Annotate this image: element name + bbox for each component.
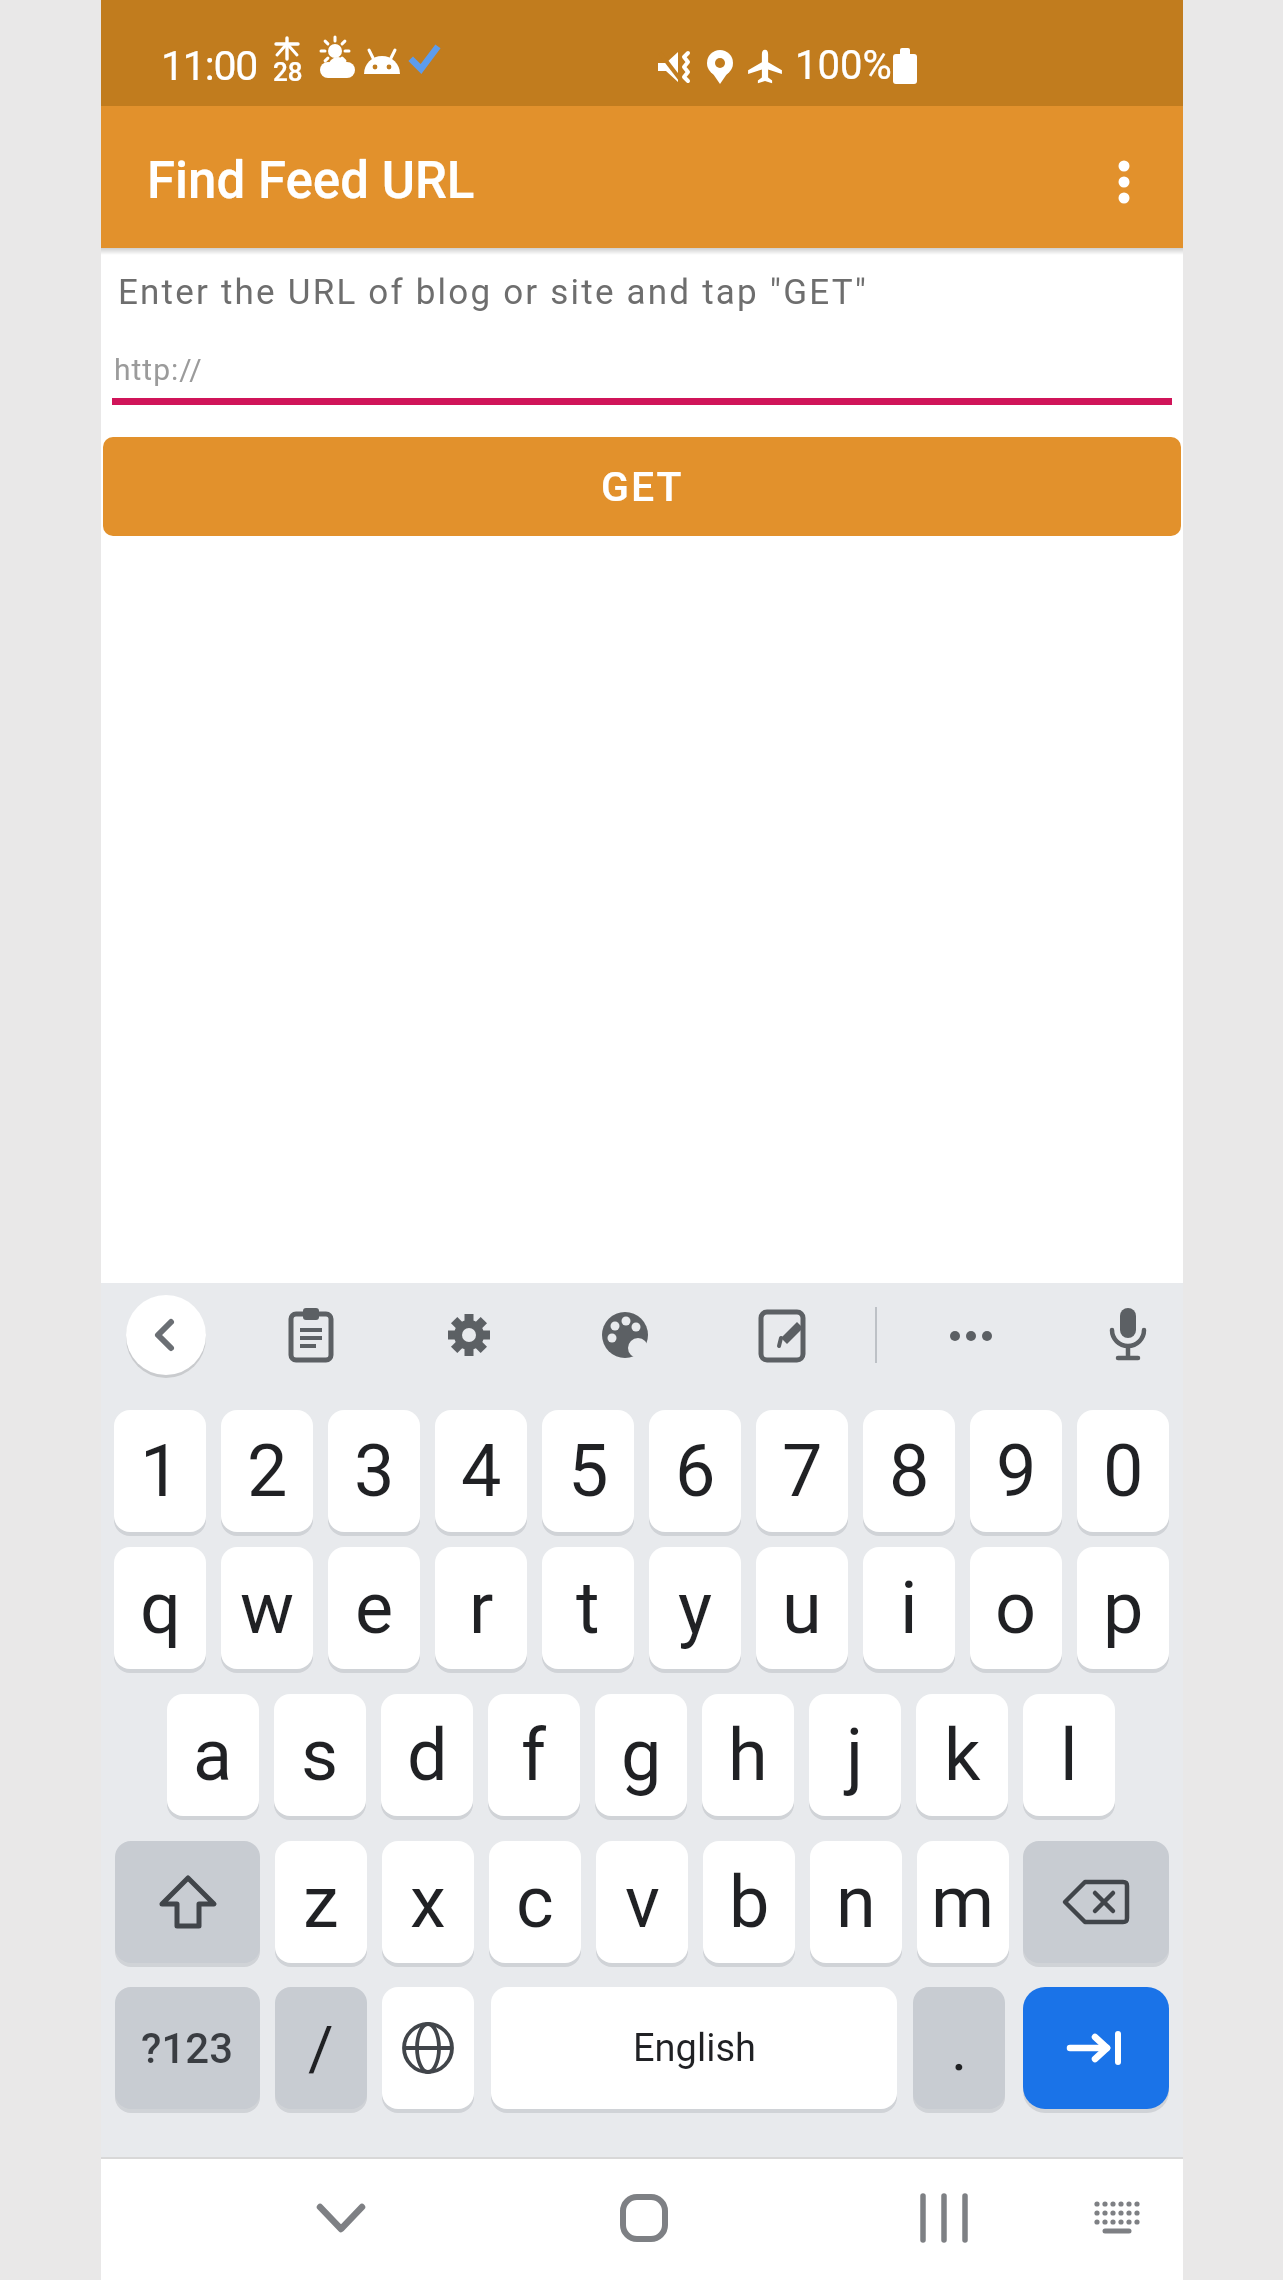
button[interactable]: 4 xyxy=(435,1410,527,1532)
button[interactable]: 2 xyxy=(221,1410,313,1532)
button[interactable] xyxy=(604,2178,684,2258)
button[interactable]: g xyxy=(595,1694,687,1816)
button[interactable]: English xyxy=(491,1987,897,2109)
staticText: 1 xyxy=(140,1429,181,1513)
staticText: r xyxy=(469,1566,494,1650)
button[interactable]: 8 xyxy=(863,1410,955,1532)
staticText: 100% xyxy=(795,42,892,89)
staticText: 8 xyxy=(889,1429,930,1513)
staticText: q xyxy=(140,1566,181,1650)
staticText: Find Feed URL xyxy=(147,151,475,211)
staticText: h xyxy=(728,1713,768,1797)
staticText: GET xyxy=(601,463,684,511)
button[interactable] xyxy=(444,1308,500,1364)
staticText: v xyxy=(625,1860,660,1944)
button[interactable]: f xyxy=(488,1694,580,1816)
button[interactable]: r xyxy=(435,1547,527,1669)
button[interactable]: m xyxy=(917,1841,1009,1963)
button[interactable]: h xyxy=(702,1694,794,1816)
button[interactable]: . xyxy=(913,1987,1005,2109)
staticText: b xyxy=(729,1860,770,1944)
button[interactable]: x xyxy=(382,1841,474,1963)
button[interactable] xyxy=(1023,1841,1169,1963)
button[interactable] xyxy=(1077,2178,1157,2258)
staticText: l xyxy=(1060,1713,1078,1797)
staticText: s xyxy=(301,1713,339,1797)
button[interactable] xyxy=(600,1308,656,1364)
staticText: y xyxy=(678,1566,713,1650)
staticText: a xyxy=(193,1713,233,1797)
staticText: k xyxy=(944,1713,981,1797)
staticText: g xyxy=(621,1713,662,1797)
button[interactable] xyxy=(301,2178,381,2258)
button[interactable] xyxy=(382,1987,474,2109)
button[interactable]: s xyxy=(274,1694,366,1816)
staticText: f xyxy=(521,1713,547,1797)
button[interactable]: d xyxy=(381,1694,473,1816)
staticText: http:// xyxy=(114,352,203,387)
staticText: 2 xyxy=(247,1429,288,1513)
staticText: 0 xyxy=(1103,1429,1144,1513)
button[interactable]: a xyxy=(167,1694,259,1816)
button[interactable]: y xyxy=(649,1547,741,1669)
button[interactable]: 6 xyxy=(649,1410,741,1532)
button[interactable]: q xyxy=(114,1547,206,1669)
staticText: / xyxy=(308,2012,334,2085)
staticText: o xyxy=(995,1566,1037,1650)
button[interactable]: p xyxy=(1077,1547,1169,1669)
staticText: ?123 xyxy=(141,2024,234,2073)
button[interactable] xyxy=(1023,1987,1169,2109)
staticText: English xyxy=(633,2026,756,2071)
button[interactable]: c xyxy=(489,1841,581,1963)
button[interactable]: t xyxy=(542,1547,634,1669)
button[interactable] xyxy=(286,1308,342,1364)
button[interactable] xyxy=(904,2178,984,2258)
staticText: p xyxy=(1103,1566,1144,1650)
staticText: m xyxy=(931,1860,995,1944)
button[interactable]: 0 xyxy=(1077,1410,1169,1532)
button[interactable]: http:// xyxy=(112,340,1172,406)
staticText: d xyxy=(407,1713,448,1797)
staticText: z xyxy=(303,1860,339,1944)
button[interactable]: v xyxy=(596,1841,688,1963)
button[interactable]: 9 xyxy=(970,1410,1062,1532)
button[interactable] xyxy=(1096,134,1152,224)
staticText: u xyxy=(782,1566,822,1650)
button[interactable]: ?123 xyxy=(115,1987,260,2109)
staticText: n xyxy=(836,1860,876,1944)
button[interactable]: u xyxy=(756,1547,848,1669)
staticText: 7 xyxy=(782,1429,823,1513)
button[interactable]: 1 xyxy=(114,1410,206,1532)
button[interactable]: z xyxy=(275,1841,367,1963)
button[interactable] xyxy=(126,1295,206,1375)
staticText: j xyxy=(846,1713,864,1797)
staticText: . xyxy=(951,2012,968,2085)
button[interactable]: 5 xyxy=(542,1410,634,1532)
button[interactable]: / xyxy=(275,1987,367,2109)
staticText: i xyxy=(900,1566,918,1650)
button[interactable]: GET xyxy=(103,437,1181,536)
button[interactable] xyxy=(115,1841,260,1963)
button[interactable] xyxy=(946,1308,1002,1364)
staticText: x xyxy=(410,1860,446,1944)
staticText: 6 xyxy=(675,1429,716,1513)
button[interactable]: w xyxy=(221,1547,313,1669)
button[interactable] xyxy=(757,1308,813,1364)
button[interactable] xyxy=(1103,1308,1159,1364)
staticText: e xyxy=(355,1566,394,1650)
button[interactable]: b xyxy=(703,1841,795,1963)
button[interactable]: 3 xyxy=(328,1410,420,1532)
staticText: Enter the URL of blog or site and tap "G… xyxy=(118,272,869,313)
staticText: 11:00 xyxy=(161,42,258,90)
staticText: 5 xyxy=(568,1429,609,1513)
button[interactable]: j xyxy=(809,1694,901,1816)
staticText: 28 xyxy=(273,57,303,87)
button[interactable]: i xyxy=(863,1547,955,1669)
button[interactable]: 7 xyxy=(756,1410,848,1532)
button[interactable]: e xyxy=(328,1547,420,1669)
button[interactable]: k xyxy=(916,1694,1008,1816)
button[interactable]: o xyxy=(970,1547,1062,1669)
button[interactable]: n xyxy=(810,1841,902,1963)
staticText: 4 xyxy=(461,1429,502,1513)
button[interactable]: l xyxy=(1023,1694,1115,1816)
